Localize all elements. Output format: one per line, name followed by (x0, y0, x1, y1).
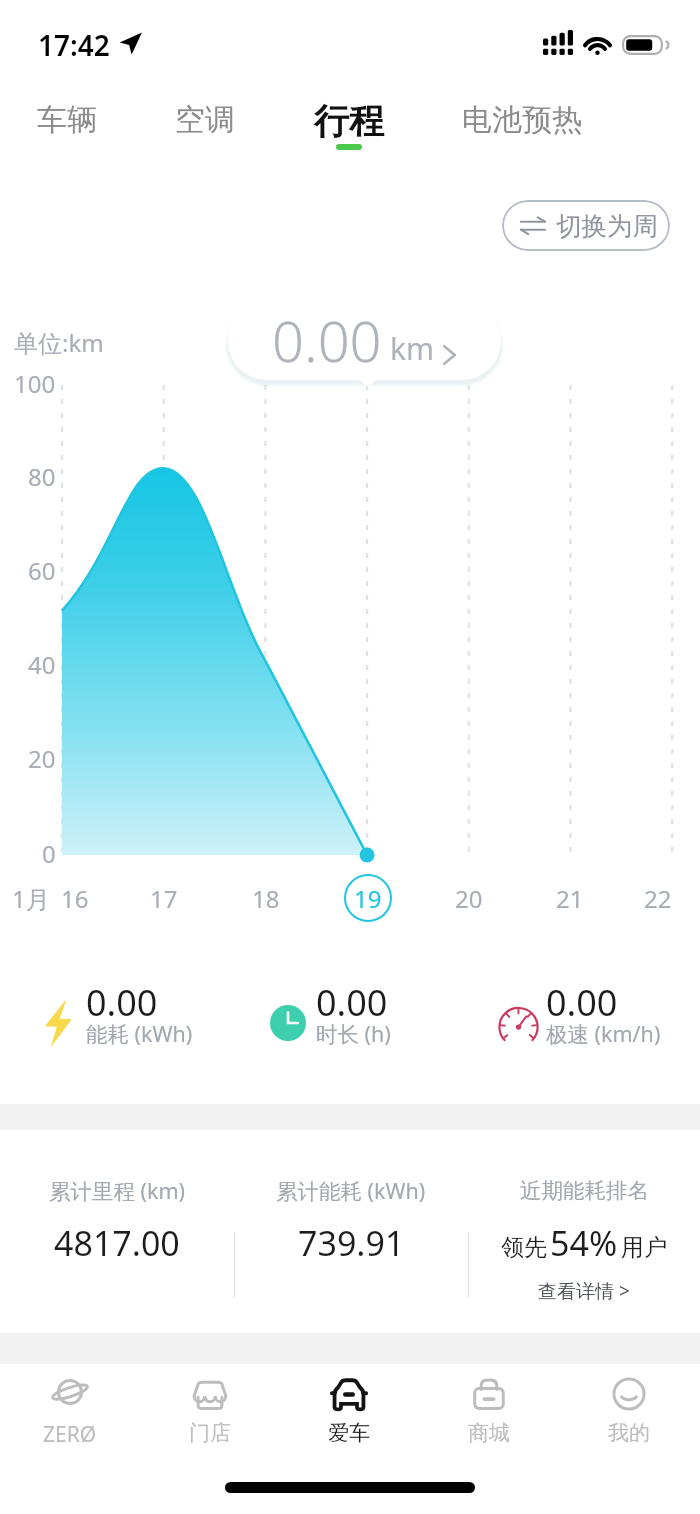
staticText: 我的 (608, 1420, 650, 1446)
staticText: 80 (28, 460, 56, 493)
staticText: 54% (550, 1220, 618, 1266)
button[interactable]: 0.00 (228, 302, 501, 380)
button[interactable]: 累计里程 (km) (0, 1130, 234, 1333)
staticText: 0.00 (272, 302, 382, 378)
staticText: 领先 (501, 1233, 547, 1262)
staticText: 1月 (12, 882, 50, 915)
button[interactable]: ZERO (0, 1364, 140, 1464)
staticText: 极速 (km/h) (546, 1019, 661, 1048)
staticText: 时长 (h) (316, 1019, 391, 1048)
staticText: 20 (455, 882, 483, 915)
staticText: 17:42 (38, 26, 110, 64)
staticText: 60 (28, 554, 56, 587)
staticText: 22 (644, 882, 672, 915)
staticText: 商城 (468, 1420, 510, 1446)
staticText: 4817.00 (54, 1220, 180, 1266)
other: 商城 (472, 1378, 506, 1410)
staticText: 0.00 (86, 978, 158, 1027)
button[interactable]: 近期能耗排名 (468, 1130, 700, 1333)
staticText: km (390, 328, 435, 369)
staticText: 空调 (175, 101, 235, 139)
staticText: ZERØ (43, 1420, 97, 1449)
other: ZERO (51, 1378, 89, 1410)
button[interactable]: 0.00 (502, 978, 700, 1050)
button[interactable]: 电池预热 (444, 88, 600, 158)
staticText: 100 (14, 367, 56, 400)
staticText: 门店 (189, 1420, 231, 1446)
staticText: 车辆 (37, 101, 97, 139)
button[interactable]: 0.00 (42, 978, 242, 1050)
staticText: 累计里程 (km) (49, 1176, 186, 1205)
staticText: 20 (28, 742, 56, 775)
staticText: 行程 (314, 99, 384, 143)
other: 门店 (192, 1378, 228, 1410)
button[interactable]: 爱车 (279, 1364, 419, 1464)
staticText: 17 (150, 882, 178, 915)
staticText: 0 (42, 837, 56, 870)
button[interactable]: 空调 (127, 88, 283, 158)
staticText: 电池预热 (462, 101, 582, 139)
staticText: 0.00 (316, 978, 388, 1027)
staticText: 能耗 (kWh) (86, 1019, 193, 1048)
button[interactable]: 行程 (271, 88, 427, 158)
other: 爱车 (330, 1379, 368, 1410)
button[interactable]: 0.00 (272, 978, 472, 1050)
button[interactable]: 商城 (419, 1364, 559, 1464)
staticText: 40 (28, 648, 56, 681)
other: 我的 (612, 1378, 646, 1410)
staticText: 16 (61, 882, 89, 915)
button[interactable]: 门店 (140, 1364, 280, 1464)
staticText: 21 (556, 882, 584, 915)
button[interactable]: 累计能耗 (kWh) (234, 1130, 468, 1333)
staticText: 用户 (621, 1233, 667, 1262)
staticText: 739.91 (298, 1220, 405, 1266)
button[interactable]: 切换为周 (502, 200, 670, 251)
staticText: 单位:km (14, 326, 104, 359)
staticText: 0.00 (546, 978, 618, 1027)
button[interactable]: 查看详情 > (468, 1273, 700, 1309)
staticText: 近期能耗排名 (520, 1177, 649, 1204)
staticText: 查看详情 > (538, 1278, 630, 1304)
staticText: 累计能耗 (kWh) (276, 1176, 426, 1205)
button[interactable]: 我的 (559, 1364, 699, 1464)
staticText: 18 (252, 882, 280, 915)
staticText: 19 (354, 882, 382, 915)
staticText: 爱车 (328, 1420, 370, 1446)
button[interactable]: 车辆 (0, 88, 145, 158)
staticText: 切换为周 (556, 210, 658, 242)
